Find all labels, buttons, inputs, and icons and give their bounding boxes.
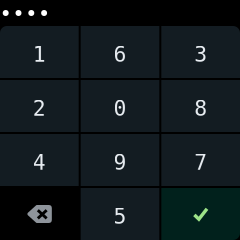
staticText: 6 bbox=[113, 42, 126, 67]
button[interactable]: 4 bbox=[0, 134, 79, 186]
staticText: 2 bbox=[33, 96, 46, 121]
button[interactable]: 7 bbox=[161, 134, 240, 186]
staticText: 7 bbox=[194, 150, 207, 175]
staticText: 4 bbox=[33, 150, 46, 175]
button[interactable]: 5 bbox=[81, 188, 159, 240]
staticText: 5 bbox=[113, 204, 126, 229]
staticText: 8 bbox=[194, 96, 207, 121]
button[interactable]: 9 bbox=[81, 134, 159, 186]
button[interactable]: 8 bbox=[161, 80, 240, 132]
staticText: 0 bbox=[113, 96, 126, 121]
button[interactable]: 1 bbox=[0, 26, 79, 78]
button[interactable]: 6 bbox=[81, 26, 159, 78]
button[interactable]: Confirm bbox=[161, 188, 240, 240]
button[interactable]: 3 bbox=[161, 26, 240, 78]
button[interactable]: 2 bbox=[0, 80, 79, 132]
staticText: 3 bbox=[194, 42, 207, 67]
button[interactable]: 0 bbox=[81, 80, 159, 132]
staticText: 1 bbox=[33, 42, 46, 67]
staticText: 9 bbox=[113, 150, 126, 175]
button[interactable]: Delete bbox=[0, 188, 79, 240]
